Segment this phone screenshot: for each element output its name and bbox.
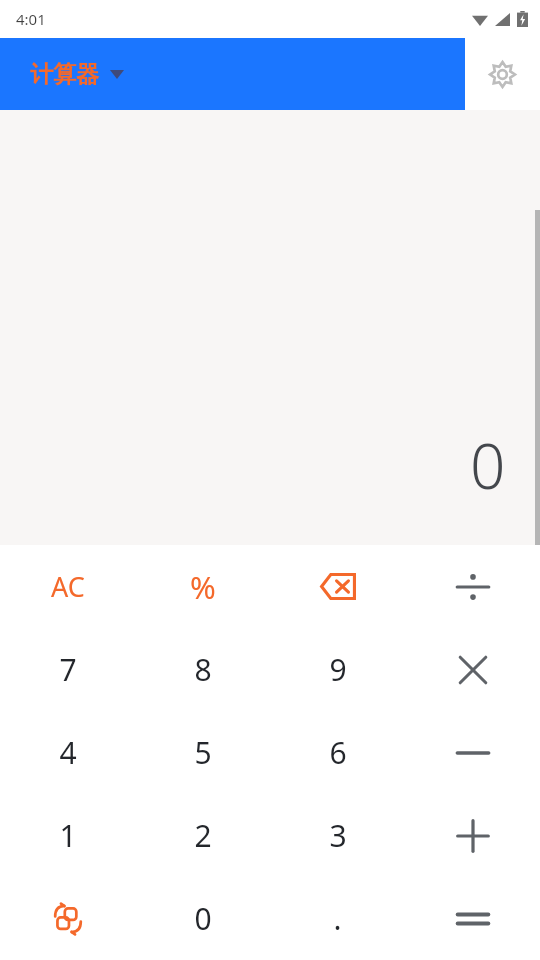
button[interactable]: Multiply xyxy=(405,628,540,711)
button[interactable]: . xyxy=(270,877,405,960)
button[interactable]: Plus xyxy=(405,794,540,877)
button[interactable]: Minus xyxy=(405,711,540,794)
staticText: 4 xyxy=(59,732,77,773)
staticText: 7 xyxy=(59,649,77,690)
staticText: 5 xyxy=(194,732,212,773)
button[interactable]: 4 xyxy=(0,711,135,794)
button[interactable]: % xyxy=(135,545,270,628)
staticText: . xyxy=(333,898,342,939)
staticText: 4:01 xyxy=(16,9,46,29)
button[interactable]: AC xyxy=(0,545,135,628)
button[interactable]: Settings xyxy=(480,52,524,96)
staticText: 9 xyxy=(329,649,347,690)
staticText: % xyxy=(190,566,216,608)
button[interactable]: 9 xyxy=(270,628,405,711)
button[interactable]: 1 xyxy=(0,794,135,877)
button[interactable]: 0 xyxy=(135,877,270,960)
staticText: 8 xyxy=(194,649,212,690)
staticText: 计算器 xyxy=(30,60,99,89)
button[interactable]: 5 xyxy=(135,711,270,794)
button[interactable]: 7 xyxy=(0,628,135,711)
staticText: 3 xyxy=(329,815,347,856)
button[interactable]: Equals xyxy=(405,877,540,960)
staticText: 6 xyxy=(329,732,347,773)
staticText: 0 xyxy=(194,898,212,939)
button[interactable]: 3 xyxy=(270,794,405,877)
button[interactable]: 6 xyxy=(270,711,405,794)
button[interactable]: Divide xyxy=(405,545,540,628)
staticText: 0 xyxy=(470,423,506,507)
button[interactable]: Backspace xyxy=(270,545,405,628)
button[interactable]: Convert units xyxy=(0,877,135,960)
staticText: 2 xyxy=(194,815,212,856)
staticText: 1 xyxy=(59,815,77,856)
staticText: AC xyxy=(51,568,85,605)
button[interactable]: 2 xyxy=(135,794,270,877)
button[interactable]: 8 xyxy=(135,628,270,711)
button[interactable]: 计算器 xyxy=(30,60,124,89)
